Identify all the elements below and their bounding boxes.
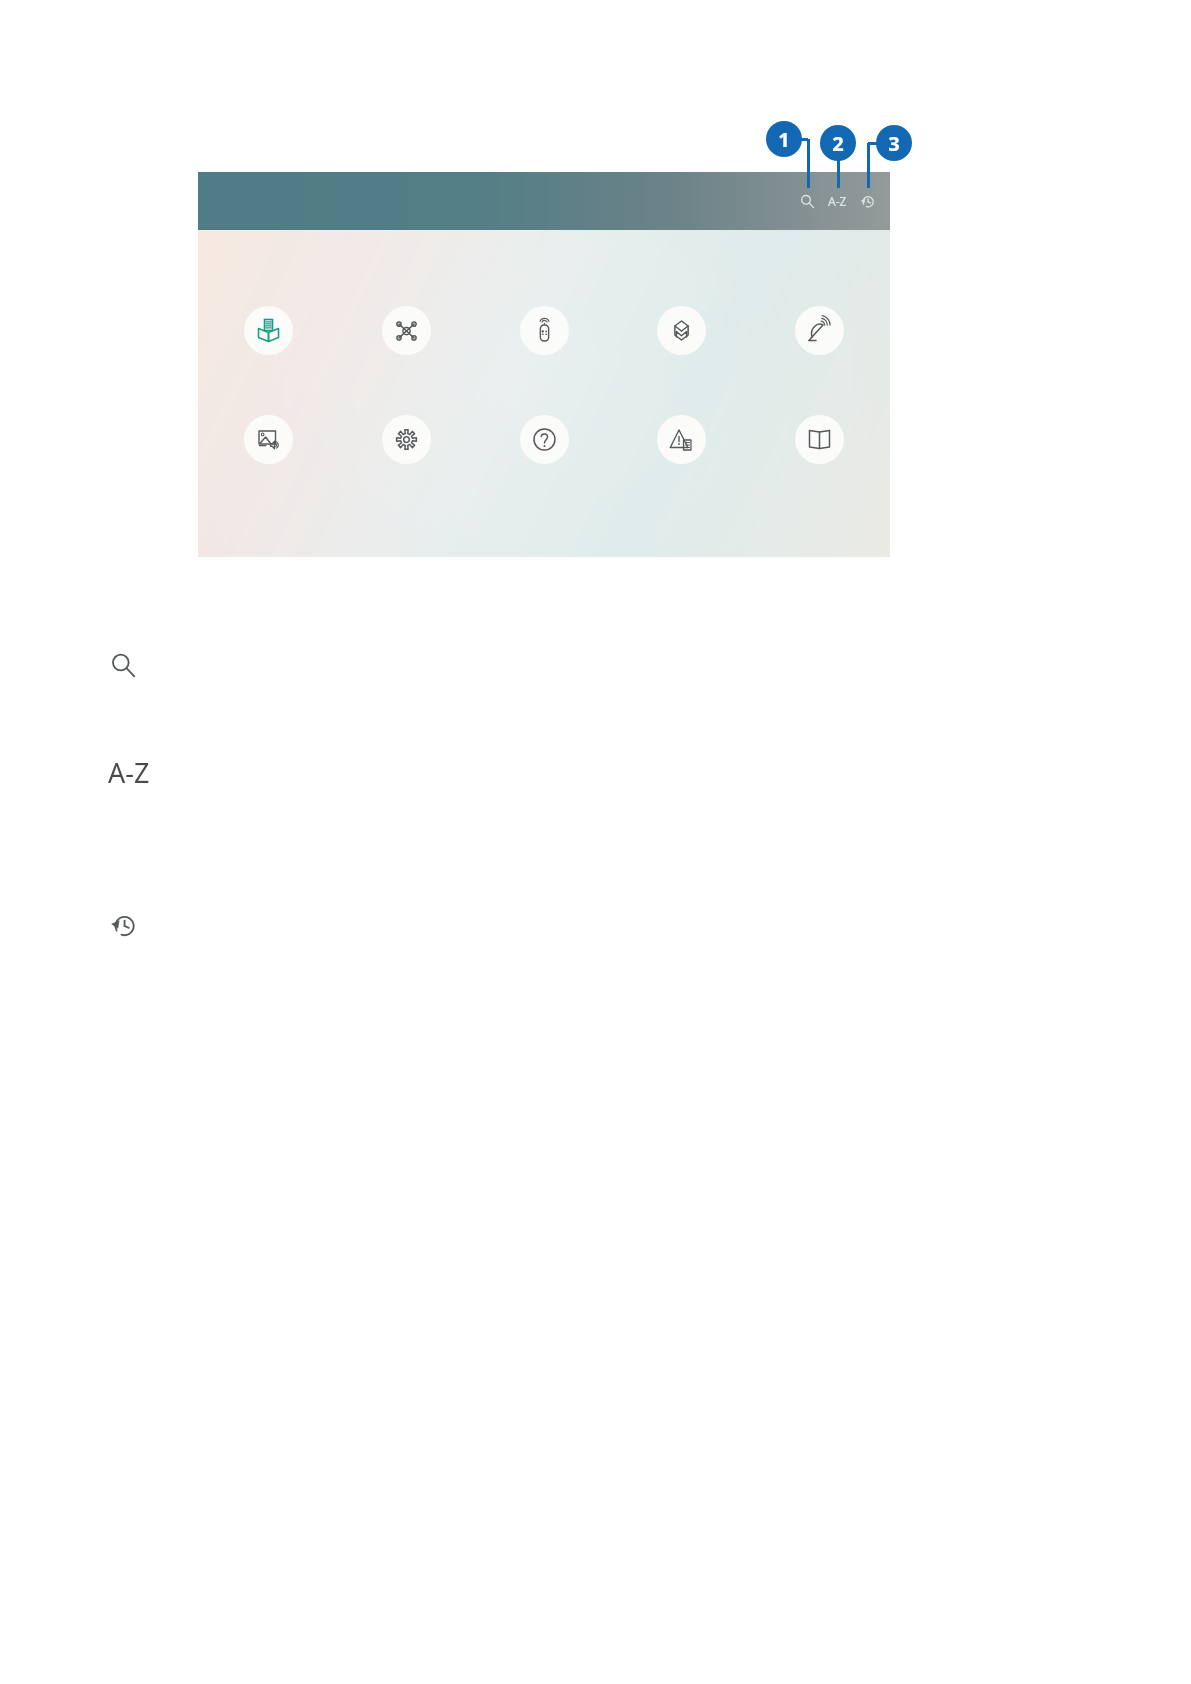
button[interactable]: 3 xyxy=(876,125,912,161)
staticText: A-Z xyxy=(828,193,847,209)
button[interactable]: Remote xyxy=(520,306,569,355)
button[interactable]: Apps xyxy=(657,306,706,355)
button[interactable]: e-Manual xyxy=(795,415,844,464)
button[interactable]: 2 xyxy=(820,125,856,161)
button[interactable]: A-Z xyxy=(108,754,150,791)
button[interactable]: Settings xyxy=(382,415,431,464)
button[interactable]: A-Z xyxy=(820,184,854,218)
button[interactable]: Search xyxy=(104,646,142,684)
button[interactable]: Recent xyxy=(854,188,880,214)
staticText: 1 xyxy=(778,126,790,153)
button[interactable]: Picture and Sound xyxy=(244,415,293,464)
button[interactable]: 1 xyxy=(766,121,802,157)
button[interactable]: Source xyxy=(244,306,293,355)
button[interactable]: Broadcast xyxy=(795,306,844,355)
button[interactable]: Troubleshooting xyxy=(657,415,706,464)
staticText: 2 xyxy=(832,130,844,157)
staticText: 3 xyxy=(888,130,900,157)
button[interactable]: Search xyxy=(794,188,820,214)
button[interactable]: Recent xyxy=(104,906,142,944)
button[interactable]: Network xyxy=(382,306,431,355)
staticText: A-Z xyxy=(108,754,150,791)
button[interactable]: Help xyxy=(520,415,569,464)
